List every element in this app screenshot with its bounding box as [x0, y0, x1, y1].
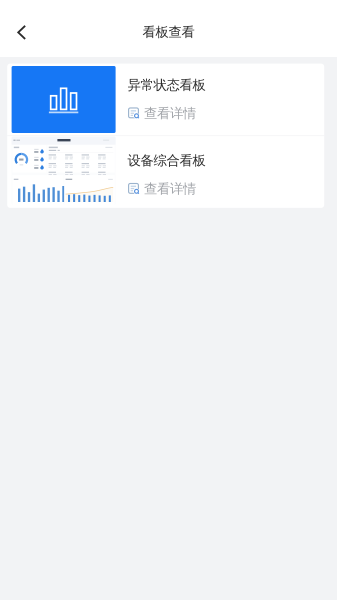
staticText: 设备综合看板	[128, 152, 206, 169]
staticText: 查看详情	[144, 105, 196, 122]
staticText: 看板查看	[142, 24, 194, 40]
button[interactable]: 异常状态看板	[7, 64, 324, 135]
button[interactable]: 设备综合看板	[7, 136, 324, 208]
button[interactable]: Back	[0, 0, 42, 57]
staticText: 查看详情	[144, 181, 196, 197]
staticText: 异常状态看板	[128, 77, 206, 93]
